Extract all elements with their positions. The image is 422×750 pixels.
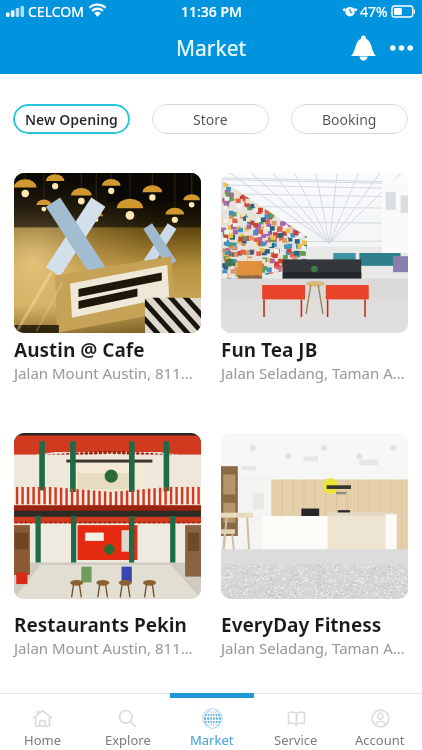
staticText: Jalan Seladang, Taman Aba... [221,638,408,658]
staticText: Jalan Seladang, Taman Aba... [221,363,408,383]
button[interactable]: Home [0,693,85,750]
staticText: CELCOM [28,2,84,21]
staticText: 11:36 PM [181,2,242,21]
button[interactable]: Restaurants Pekin [14,433,201,658]
button[interactable]: Store [152,104,269,134]
staticText: Store [193,110,228,129]
staticText: Service [274,731,318,749]
staticText: Jalan Mount Austin, 81150... [14,363,201,383]
button[interactable]: Account [338,693,422,750]
staticText: New Opening [25,110,118,129]
staticText: Home [24,731,61,749]
staticText: Austin @ Cafe [14,337,145,363]
staticText: Restaurants Pekin [14,612,187,638]
button[interactable]: Service [254,693,338,750]
staticText: Market [176,34,247,63]
button[interactable]: EveryDay Fitness [221,433,408,658]
button[interactable]: Notifications [343,28,383,68]
staticText: 47% [360,2,388,21]
button[interactable]: Market [170,693,254,750]
button[interactable]: Explore [85,693,170,750]
staticText: Market [190,731,234,749]
staticText: Jalan Mount Austin, 81150... [14,638,201,658]
staticText: Account [355,731,405,749]
button[interactable]: New Opening [13,104,130,134]
staticText: Booking [322,110,377,129]
staticText: Explore [105,731,151,749]
button[interactable]: Fun Tea JB [221,173,408,383]
button[interactable]: More options [384,31,418,65]
button[interactable]: Booking [291,104,408,134]
staticText: EveryDay Fitness [221,612,382,638]
button[interactable]: Austin @ Cafe [14,173,201,383]
staticText: Fun Tea JB [221,337,318,363]
